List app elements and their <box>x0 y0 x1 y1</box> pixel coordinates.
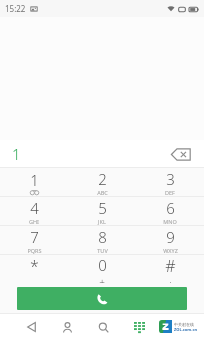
button[interactable]: 0 <box>68 255 136 283</box>
staticText: 8 <box>98 227 107 247</box>
staticText: 6 <box>166 198 175 218</box>
staticText: 5 <box>98 198 107 218</box>
staticText: ZOL.com.cn <box>174 327 198 332</box>
staticText: # <box>165 255 176 277</box>
button[interactable]: 2 <box>68 168 136 196</box>
button[interactable]: 9 <box>136 226 204 254</box>
staticText: 9 <box>166 227 175 247</box>
button[interactable]: 4 <box>0 197 68 225</box>
button[interactable]: * <box>0 255 68 283</box>
staticText: + <box>99 275 105 283</box>
staticText: 中关村在线 <box>174 322 194 327</box>
staticText: 1 <box>12 144 21 164</box>
button[interactable]: Search <box>90 314 116 340</box>
button[interactable]: Backspace <box>168 145 194 163</box>
staticText: MNO <box>163 218 177 225</box>
staticText: 0 <box>98 255 107 275</box>
button[interactable]: 3 <box>136 168 204 196</box>
staticText: * <box>30 255 39 277</box>
button[interactable]: Keypad <box>126 314 152 340</box>
staticText: WXYZ <box>163 247 178 254</box>
staticText: 4 <box>30 198 39 218</box>
button[interactable]: # <box>136 255 204 283</box>
staticText: 1 <box>30 170 39 190</box>
staticText: DEF <box>165 189 175 196</box>
button[interactable]: 7 <box>0 226 68 254</box>
staticText: ABC <box>97 189 108 196</box>
staticText: 2 <box>98 169 107 189</box>
staticText: 3 <box>166 169 175 189</box>
staticText: PQRS <box>27 247 42 254</box>
staticText: 7 <box>30 227 39 247</box>
staticText: 15:22 <box>5 3 26 14</box>
staticText: TUV <box>97 247 108 254</box>
button[interactable]: Contacts <box>54 314 80 340</box>
button[interactable]: 1 <box>0 168 68 196</box>
button[interactable]: 6 <box>136 197 204 225</box>
staticText: JKL <box>98 218 106 225</box>
button[interactable]: Call <box>17 287 187 310</box>
button[interactable]: 8 <box>68 226 136 254</box>
button[interactable]: Back <box>18 314 44 340</box>
staticText: ; <box>169 277 172 283</box>
button[interactable]: 5 <box>68 197 136 225</box>
staticText: GHI <box>29 218 39 225</box>
